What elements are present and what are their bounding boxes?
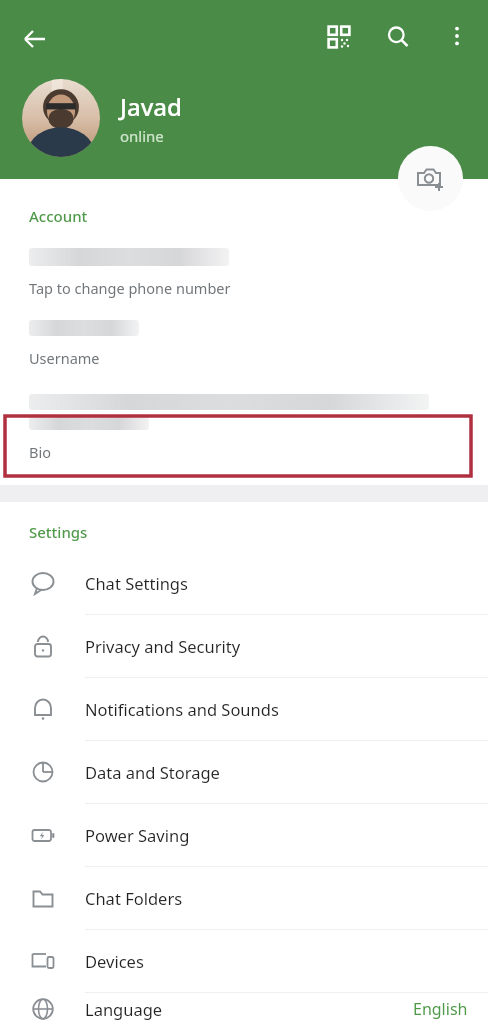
staticText: English <box>413 998 468 1020</box>
button[interactable]: Tap to change phone number <box>0 242 488 304</box>
button[interactable]: Set profile photo <box>398 146 463 211</box>
staticText: Settings <box>29 522 88 542</box>
button[interactable]: Profile photo <box>22 79 100 157</box>
button[interactable]: Bio <box>0 390 488 474</box>
staticText: Privacy and Security <box>85 635 241 657</box>
staticText: Bio <box>29 442 51 462</box>
button[interactable]: Data and Storage <box>0 741 488 803</box>
button[interactable]: Power Saving <box>0 804 488 866</box>
staticText: Username <box>29 348 100 368</box>
staticText: Data and Storage <box>85 761 220 783</box>
button[interactable]: Username <box>0 314 488 376</box>
staticText: Tap to change phone number <box>29 278 231 298</box>
staticText: Javad <box>120 90 182 123</box>
button[interactable]: Devices <box>0 930 488 992</box>
staticText: Devices <box>85 950 144 972</box>
button[interactable]: Back <box>10 14 60 64</box>
staticText: Language <box>85 998 163 1020</box>
button[interactable]: QR code <box>313 11 365 63</box>
staticText: Chat Folders <box>85 887 183 909</box>
button[interactable]: Notifications and Sounds <box>0 678 488 740</box>
button[interactable]: Privacy and Security <box>0 615 488 677</box>
button[interactable]: Search <box>372 11 424 63</box>
button[interactable]: Chat Settings <box>0 552 488 614</box>
button[interactable]: More options <box>432 11 482 61</box>
staticText: online <box>120 126 164 146</box>
button[interactable]: Language <box>0 993 488 1024</box>
staticText: Notifications and Sounds <box>85 698 279 720</box>
button[interactable]: Chat Folders <box>0 867 488 929</box>
staticText: Power Saving <box>85 824 190 846</box>
staticText: Account <box>29 206 88 226</box>
staticText: Chat Settings <box>85 572 188 594</box>
